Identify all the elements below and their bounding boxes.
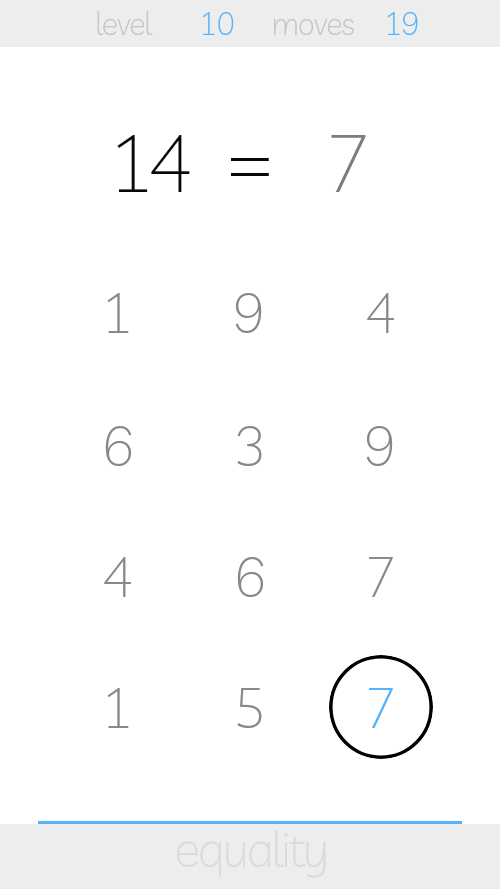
staticText: moves — [271, 4, 354, 43]
button[interactable]: Number 1 — [66, 260, 170, 364]
staticText: 5 — [233, 673, 267, 742]
staticText: 19 — [384, 4, 419, 43]
staticText: equality — [174, 818, 327, 879]
button[interactable]: Number 9 — [198, 260, 302, 364]
button[interactable]: Number 5 — [198, 655, 302, 759]
staticText: 9 — [233, 278, 267, 347]
button[interactable]: equality — [0, 824, 500, 889]
button[interactable]: Number 7 — [329, 524, 433, 628]
staticText: 6 — [101, 411, 135, 480]
button[interactable]: Selected number 7 — [329, 655, 433, 759]
button[interactable]: Number 3 — [198, 393, 302, 497]
button[interactable]: Number 6 — [198, 524, 302, 628]
staticText: 1 — [101, 673, 135, 742]
staticText: 9 — [364, 411, 398, 480]
staticText: level — [95, 4, 151, 43]
staticText: 3 — [233, 411, 267, 480]
staticText: 7 — [364, 673, 398, 742]
staticText: 4 — [101, 542, 135, 611]
staticText: = — [226, 108, 274, 207]
button[interactable]: Number 6 — [66, 393, 170, 497]
button[interactable]: Number 1 — [66, 655, 170, 759]
button[interactable]: Number 9 — [329, 393, 433, 497]
staticText: 10 — [199, 4, 234, 43]
button[interactable]: Number 4 — [66, 524, 170, 628]
staticText: 14 — [108, 113, 185, 212]
staticText: 1 — [101, 278, 135, 347]
button[interactable]: Number 4 — [329, 260, 433, 364]
staticText: 7 — [324, 113, 372, 212]
staticText: 4 — [364, 278, 398, 347]
staticText: 7 — [364, 542, 398, 611]
staticText: 6 — [233, 542, 267, 611]
